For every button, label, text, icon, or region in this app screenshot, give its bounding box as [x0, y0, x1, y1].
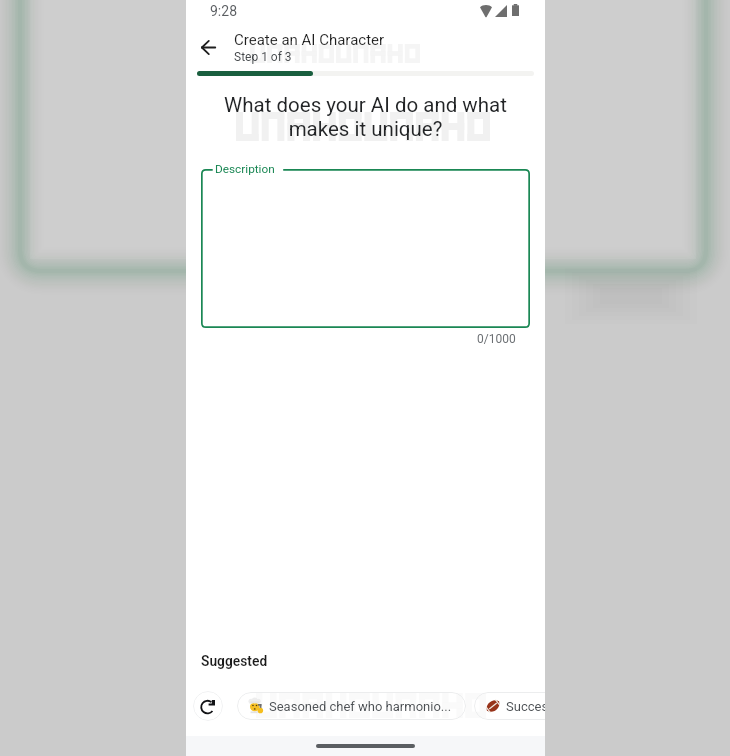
staticText: Seasoned chef who harmonio...	[269, 699, 452, 714]
button[interactable]: Successful entrepreneur	[474, 692, 545, 720]
staticText: Create an AI Character	[234, 31, 385, 49]
staticText: Description	[215, 162, 275, 176]
staticText: What does your AI do and what makes it u…	[212, 93, 519, 141]
button[interactable]: Refresh suggestions	[193, 691, 223, 721]
staticText: Successful entrepreneur	[506, 699, 545, 714]
staticText: Step 1 of 3	[234, 50, 292, 64]
staticText: 0/1000	[477, 332, 516, 346]
button[interactable]: Back	[188, 27, 228, 67]
button[interactable]	[201, 169, 530, 328]
button[interactable]: Seasoned chef who harmonio...	[237, 692, 466, 720]
staticText: Suggested	[201, 653, 268, 669]
staticText: 9:28	[210, 3, 237, 19]
